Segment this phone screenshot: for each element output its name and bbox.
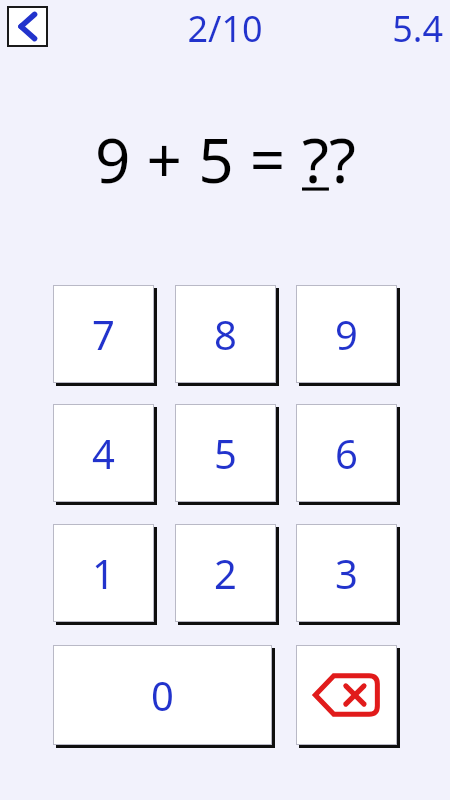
staticText: 6: [335, 426, 358, 480]
button[interactable]: 1: [53, 524, 154, 622]
staticText: 5: [214, 426, 237, 480]
staticText: 9 + 5 =: [95, 117, 302, 201]
staticText: ?: [329, 117, 356, 201]
button[interactable]: Backspace: [296, 645, 397, 745]
button[interactable]: 6: [296, 404, 397, 502]
button[interactable]: 4: [53, 404, 154, 502]
staticText: 2/10: [187, 4, 263, 50]
staticText: 0: [151, 668, 174, 722]
staticText: 8: [214, 307, 237, 361]
button[interactable]: 0: [53, 645, 272, 745]
button[interactable]: 8: [175, 285, 276, 383]
button[interactable]: 3: [296, 524, 397, 622]
button[interactable]: 2: [175, 524, 276, 622]
staticText: 5.4: [392, 4, 443, 50]
staticText: 4: [92, 426, 115, 480]
staticText: 9: [335, 307, 358, 361]
button[interactable]: 9: [296, 285, 397, 383]
staticText: 3: [335, 546, 358, 600]
button[interactable]: 5: [175, 404, 276, 502]
button[interactable]: 7: [53, 285, 154, 383]
staticText: 1: [92, 546, 115, 600]
button[interactable]: Back: [7, 6, 48, 47]
staticText: ?: [302, 117, 329, 201]
staticText: 2: [214, 546, 237, 600]
staticText: 7: [92, 307, 115, 361]
